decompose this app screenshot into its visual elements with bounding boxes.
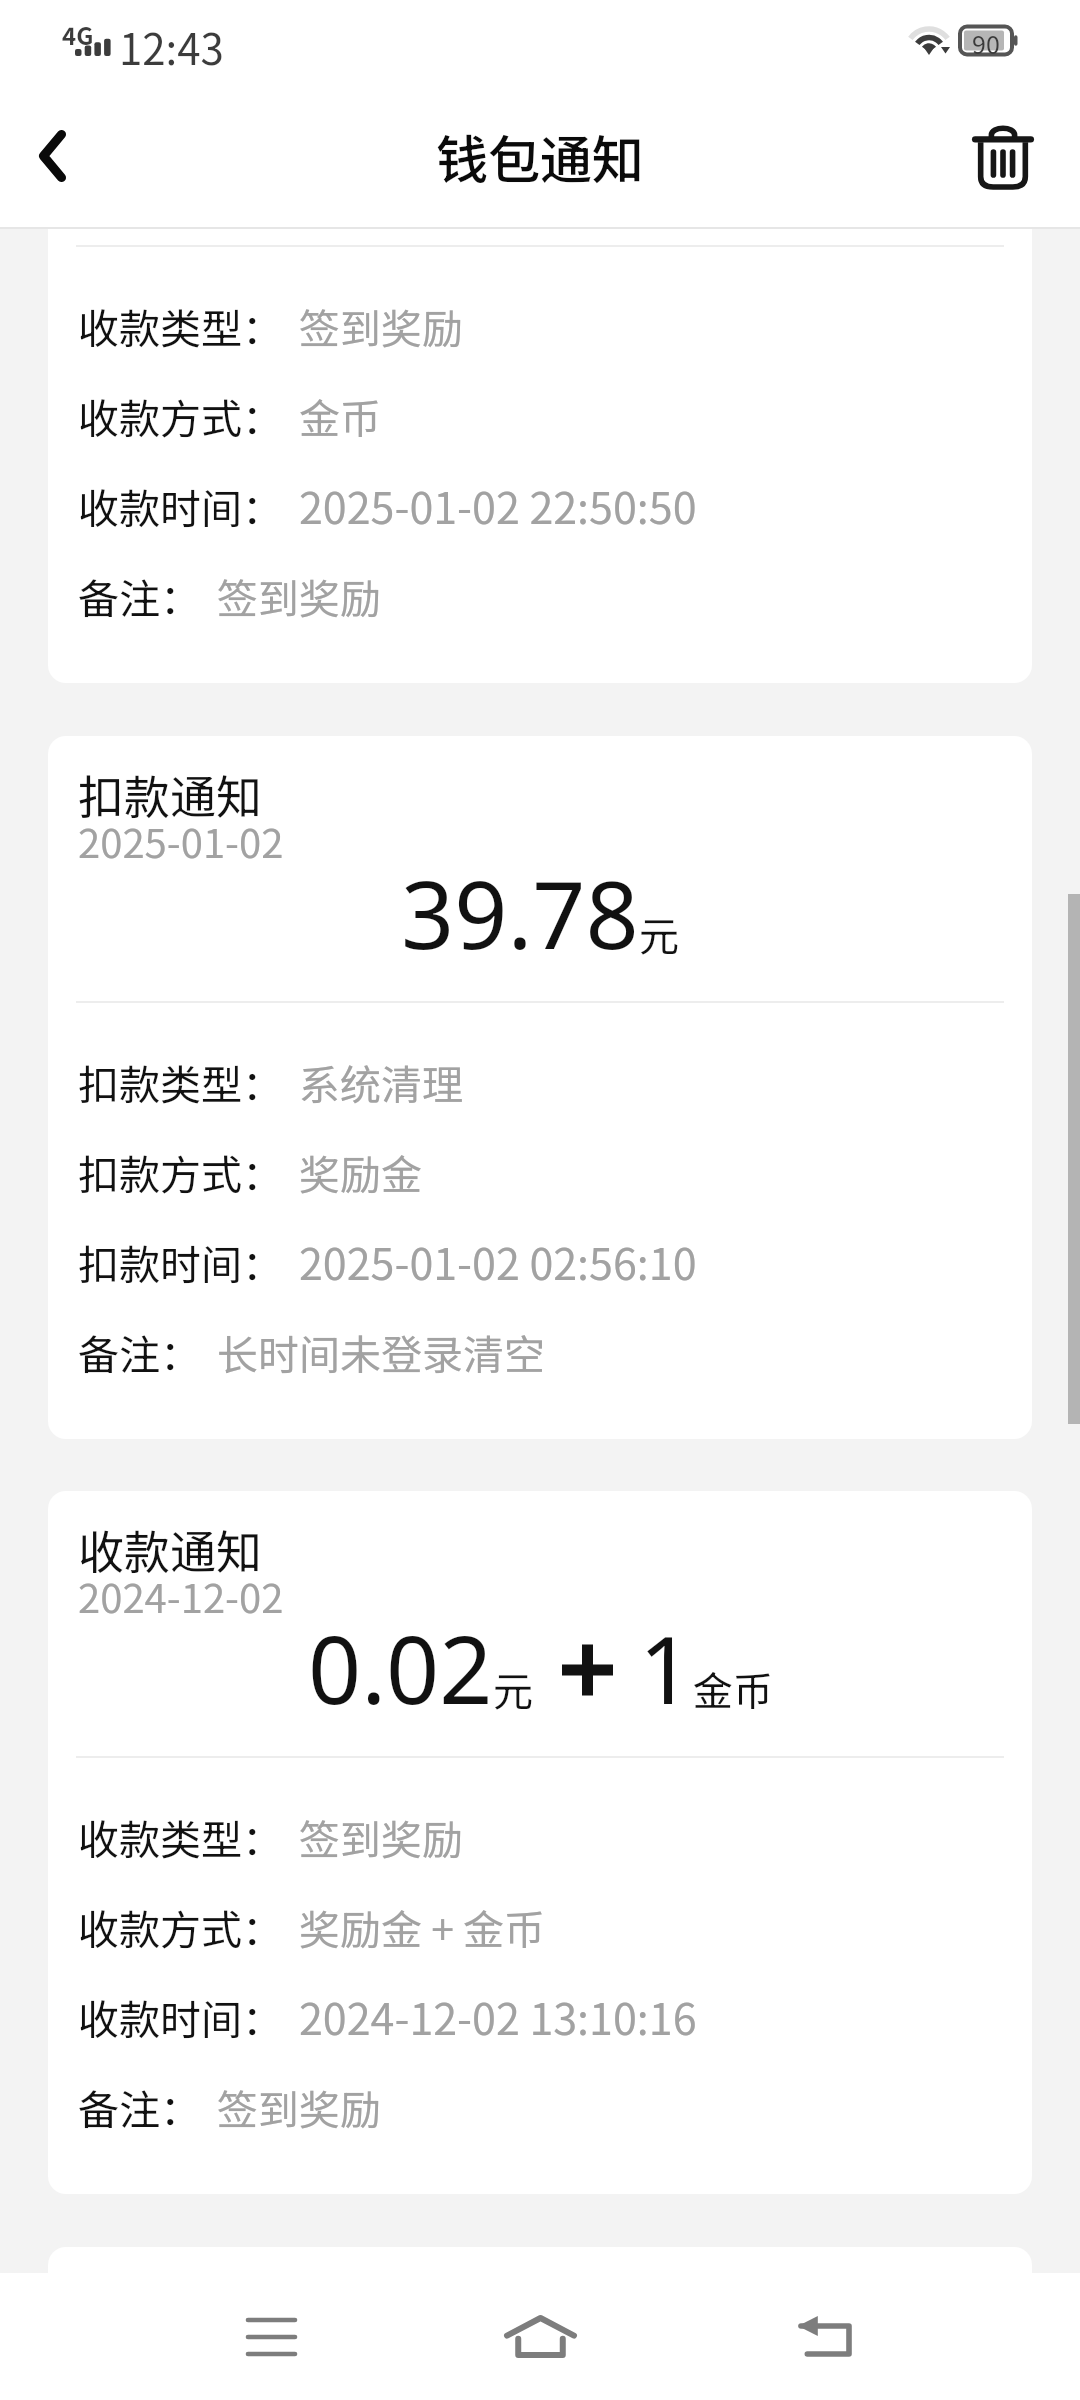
staticText: 奖励金 bbox=[299, 1142, 422, 1201]
staticText: 扣款方式： bbox=[78, 1142, 283, 1201]
staticText: 收款方式： bbox=[78, 1897, 283, 1956]
staticText: 2025-01-02 bbox=[78, 812, 284, 870]
staticText: 长时间未登录清空 bbox=[217, 1322, 545, 1381]
button[interactable]: 扣款通知 bbox=[48, 736, 1032, 1439]
staticText: 金币 bbox=[299, 386, 381, 445]
staticText: 2024-12-02 13:10:16 bbox=[299, 1985, 697, 2047]
staticText: 收款通知 bbox=[78, 1516, 262, 1583]
staticText: 扣款类型： bbox=[78, 1052, 283, 1111]
staticText: 12:43 bbox=[119, 16, 224, 77]
staticText: 元 bbox=[639, 905, 679, 963]
staticText: 金币 bbox=[693, 1660, 773, 1718]
staticText: 收款类型： bbox=[78, 296, 283, 355]
staticText: 2025-01-02 02:56:10 bbox=[299, 1230, 697, 1292]
button[interactable]: 收款通知 bbox=[48, 1491, 1032, 2194]
staticText: 收款时间： bbox=[78, 1987, 283, 2046]
staticText: 签到奖励 bbox=[217, 2077, 381, 2136]
button[interactable]: Recent apps bbox=[201, 2280, 341, 2393]
staticText: 收款方式： bbox=[78, 386, 283, 445]
staticText: 90 bbox=[972, 25, 1000, 56]
staticText: 备注： bbox=[78, 2077, 201, 2136]
button[interactable]: Back bbox=[4, 109, 98, 203]
staticText: 钱包通知 bbox=[436, 119, 645, 194]
button[interactable]: 收款类型： bbox=[48, 229, 1032, 683]
staticText: 签到奖励 bbox=[217, 566, 381, 625]
staticText: 1 bbox=[639, 1605, 693, 1732]
button[interactable]: Delete all bbox=[974, 126, 1032, 188]
staticText: 0.02 bbox=[308, 1605, 493, 1732]
staticText: 签到奖励 bbox=[299, 296, 463, 355]
staticText: 签到奖励 bbox=[299, 1807, 463, 1866]
staticText: 系统清理 bbox=[299, 1052, 463, 1111]
staticText: 2024-12-02 bbox=[78, 1567, 284, 1625]
staticText: 2025-01-02 22:50:50 bbox=[299, 474, 697, 536]
staticText: 4G bbox=[62, 17, 94, 52]
staticText: 39.78 bbox=[401, 850, 639, 977]
staticText: 元 bbox=[493, 1660, 533, 1718]
staticText: 扣款时间： bbox=[78, 1232, 283, 1291]
staticText: 奖励金 + 金币 bbox=[299, 1897, 546, 1956]
staticText: 收款时间： bbox=[78, 476, 283, 535]
button[interactable]: Home bbox=[470, 2280, 610, 2393]
button[interactable]: Back bbox=[755, 2280, 895, 2393]
staticText: 备注： bbox=[78, 1322, 201, 1381]
staticText: 扣款通知 bbox=[78, 761, 262, 828]
staticText: 收款类型： bbox=[78, 1807, 283, 1866]
staticText: 备注： bbox=[78, 566, 201, 625]
